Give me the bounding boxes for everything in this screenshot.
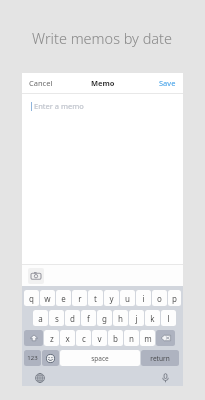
staticText: y bbox=[109, 293, 114, 304]
staticText: x bbox=[65, 333, 70, 344]
staticText: r bbox=[78, 293, 82, 304]
staticText: o bbox=[157, 293, 162, 304]
staticText: z bbox=[50, 333, 54, 344]
staticText: return bbox=[150, 354, 170, 363]
staticText: Save bbox=[159, 78, 176, 88]
staticText: n bbox=[129, 333, 134, 344]
button[interactable]: Add photo bbox=[28, 268, 44, 284]
button[interactable]: m bbox=[140, 330, 155, 346]
button[interactable]: i bbox=[136, 290, 151, 306]
button[interactable]: Shift bbox=[24, 330, 43, 346]
button[interactable]: b bbox=[108, 330, 123, 346]
staticText: Write memos by date bbox=[32, 28, 173, 48]
staticText: k bbox=[150, 313, 155, 324]
staticText: s bbox=[55, 313, 59, 324]
button[interactable]: 123 bbox=[24, 350, 41, 366]
button[interactable]: Save bbox=[152, 73, 183, 93]
button[interactable]: c bbox=[76, 330, 91, 346]
staticText: 123 bbox=[27, 354, 38, 362]
button[interactable]: y bbox=[104, 290, 119, 306]
button[interactable]: l bbox=[161, 310, 176, 326]
staticText: g bbox=[102, 313, 107, 324]
button[interactable]: u bbox=[120, 290, 135, 306]
staticText: f bbox=[87, 313, 90, 324]
button[interactable]: v bbox=[92, 330, 107, 346]
button[interactable]: return bbox=[141, 350, 179, 366]
staticText: Cancel bbox=[29, 78, 53, 88]
button[interactable]: z bbox=[44, 330, 59, 346]
staticText: d bbox=[70, 313, 75, 324]
button[interactable]: n bbox=[124, 330, 139, 346]
button[interactable]: k bbox=[145, 310, 160, 326]
staticText: v bbox=[97, 333, 102, 344]
button[interactable]: e bbox=[56, 290, 71, 306]
button[interactable]: s bbox=[49, 310, 64, 326]
staticText: i bbox=[142, 293, 145, 304]
button[interactable]: Emoji bbox=[42, 350, 59, 366]
button[interactable]: o bbox=[152, 290, 167, 306]
button[interactable]: d bbox=[65, 310, 80, 326]
button[interactable]: space bbox=[60, 350, 140, 366]
button[interactable]: g bbox=[97, 310, 112, 326]
staticText: q bbox=[29, 293, 34, 304]
staticText: c bbox=[82, 333, 86, 344]
button[interactable]: Switch keyboard bbox=[24, 369, 56, 386]
button[interactable]: j bbox=[129, 310, 144, 326]
staticText: m bbox=[144, 333, 152, 344]
button[interactable]: h bbox=[113, 310, 128, 326]
button[interactable]: Voice input bbox=[149, 369, 181, 386]
staticText: p bbox=[172, 293, 177, 304]
staticText: u bbox=[125, 293, 130, 304]
staticText: j bbox=[135, 313, 138, 324]
button[interactable]: x bbox=[60, 330, 75, 346]
button[interactable]: Backspace bbox=[156, 330, 175, 346]
button[interactable]: f bbox=[81, 310, 96, 326]
staticText: b bbox=[113, 333, 118, 344]
button[interactable]: a bbox=[33, 310, 48, 326]
staticText: a bbox=[38, 313, 43, 324]
staticText: t bbox=[94, 293, 97, 304]
staticText: e bbox=[61, 293, 66, 304]
staticText: Memo bbox=[91, 78, 115, 88]
staticText: Enter a memo bbox=[34, 101, 84, 111]
staticText: w bbox=[44, 293, 51, 304]
button[interactable]: r bbox=[72, 290, 87, 306]
staticText: space bbox=[91, 354, 109, 363]
button[interactable]: w bbox=[40, 290, 55, 306]
button[interactable]: t bbox=[88, 290, 103, 306]
button[interactable]: Enter a memo bbox=[22, 94, 183, 264]
button[interactable]: Cancel bbox=[22, 73, 60, 93]
staticText: l bbox=[167, 313, 170, 324]
button[interactable]: q bbox=[24, 290, 39, 306]
button[interactable]: p bbox=[168, 290, 181, 306]
staticText: h bbox=[118, 313, 123, 324]
